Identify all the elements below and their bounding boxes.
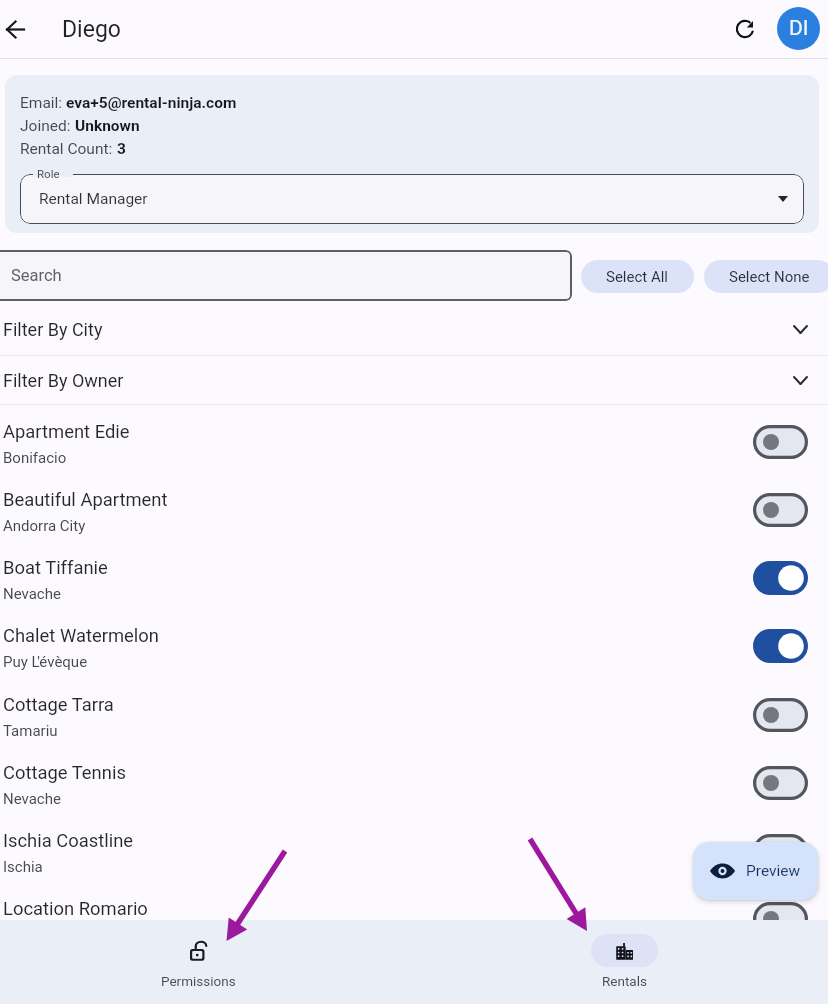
button[interactable]: Filter By City xyxy=(0,302,828,356)
staticText: Email: xyxy=(20,94,66,112)
button[interactable]: Select All xyxy=(581,260,694,293)
staticText: Rentals xyxy=(602,973,647,989)
staticText: Unknown xyxy=(75,117,140,135)
staticText: Joined: xyxy=(20,117,75,135)
button[interactable]: Preview xyxy=(693,842,818,900)
button[interactable]: Chalet Watermelon xyxy=(0,614,828,682)
button[interactable]: Ischia Coastline xyxy=(0,819,828,887)
button[interactable]: Disabled xyxy=(753,766,808,800)
staticText: Rental Manager xyxy=(39,190,148,208)
button[interactable] xyxy=(20,174,804,224)
staticText: Chalet Watermelon xyxy=(3,625,159,647)
button[interactable]: Enabled xyxy=(753,561,808,595)
button[interactable]: Disabled xyxy=(753,493,808,527)
button[interactable]: Permissions xyxy=(138,928,258,990)
staticText: eva+5@rental-ninja.com xyxy=(66,94,237,112)
staticText: Select All xyxy=(606,268,669,286)
staticText: Bonifacio xyxy=(3,449,67,467)
staticText: DI xyxy=(789,16,809,41)
button[interactable]: Disabled xyxy=(753,698,808,732)
staticText: Beautiful Apartment xyxy=(3,489,168,511)
staticText: Apartment Edie xyxy=(3,421,130,443)
staticText: Tamariu xyxy=(3,722,58,740)
button[interactable]: Refresh xyxy=(721,5,769,53)
button[interactable]: Account xyxy=(777,7,820,50)
staticText: Filter By Owner xyxy=(3,370,124,391)
button[interactable]: Filter By Owner xyxy=(0,356,828,405)
staticText: Select None xyxy=(729,268,810,286)
button[interactable]: Rentals xyxy=(564,928,684,990)
button[interactable]: Cottage Tarra xyxy=(0,683,828,751)
staticText: Diego xyxy=(62,16,121,43)
staticText: Preview xyxy=(746,862,801,880)
staticText: Cottage Tarra xyxy=(3,694,114,716)
staticText: Cottage Tennis xyxy=(3,762,126,784)
button[interactable]: Enabled xyxy=(753,629,808,663)
staticText: Rental Count: xyxy=(20,140,117,158)
button[interactable]: Back xyxy=(0,5,30,53)
button[interactable]: Cottage Tennis xyxy=(0,751,828,819)
button[interactable]: Disabled xyxy=(753,425,808,459)
staticText: Location Romario xyxy=(3,898,148,920)
staticText: 3 xyxy=(117,140,126,158)
staticText: Nevache xyxy=(3,790,61,808)
button[interactable]: Disabled xyxy=(753,902,808,936)
staticText: Filter By City xyxy=(3,319,103,340)
button[interactable]: Beautiful Apartment xyxy=(0,478,828,546)
staticText: Role xyxy=(37,167,60,180)
staticText: Nevache xyxy=(3,585,61,603)
staticText: Ischia xyxy=(3,858,43,876)
staticText: Puy L'évèque xyxy=(3,653,88,671)
button[interactable]: Boat Tiffanie xyxy=(0,546,828,614)
button[interactable]: Disabled xyxy=(753,834,808,868)
button[interactable]: Search xyxy=(0,250,572,301)
staticText: Permissions xyxy=(161,973,236,989)
button[interactable]: Apartment Edie xyxy=(0,410,828,478)
staticText: Search xyxy=(11,266,62,285)
staticText: Andorra City xyxy=(3,517,86,535)
staticText: Ischia Coastline xyxy=(3,830,134,852)
button[interactable]: Location Romario xyxy=(0,887,828,955)
staticText: Boat Tiffanie xyxy=(3,557,108,579)
button[interactable]: Select None xyxy=(704,260,828,293)
